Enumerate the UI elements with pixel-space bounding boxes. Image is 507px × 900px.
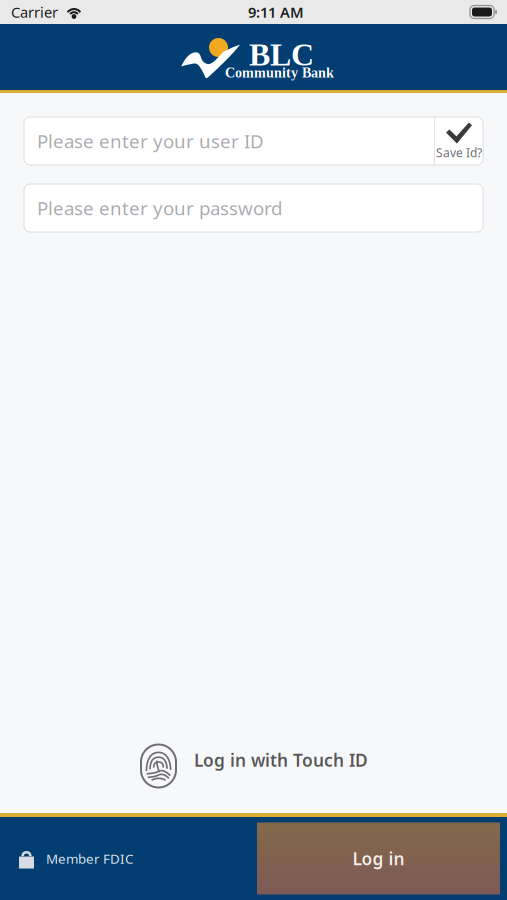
button[interactable]: Save Id bbox=[435, 117, 483, 165]
staticText: Please enter your user ID bbox=[37, 129, 264, 153]
staticText: Member FDIC bbox=[46, 850, 133, 867]
staticText: Log in bbox=[352, 847, 404, 870]
staticText: Please enter your password bbox=[37, 196, 282, 220]
staticText: BLC bbox=[249, 37, 314, 72]
staticText: Carrier bbox=[11, 2, 58, 22]
staticText: Community Bank bbox=[225, 65, 334, 81]
staticText: Log in with Touch ID bbox=[194, 748, 368, 771]
staticText: Save Id? bbox=[436, 144, 482, 160]
button[interactable]: Log in bbox=[257, 822, 500, 894]
staticText: 9:11 AM bbox=[248, 2, 304, 22]
button[interactable]: Log in with Touch ID bbox=[139, 743, 368, 789]
